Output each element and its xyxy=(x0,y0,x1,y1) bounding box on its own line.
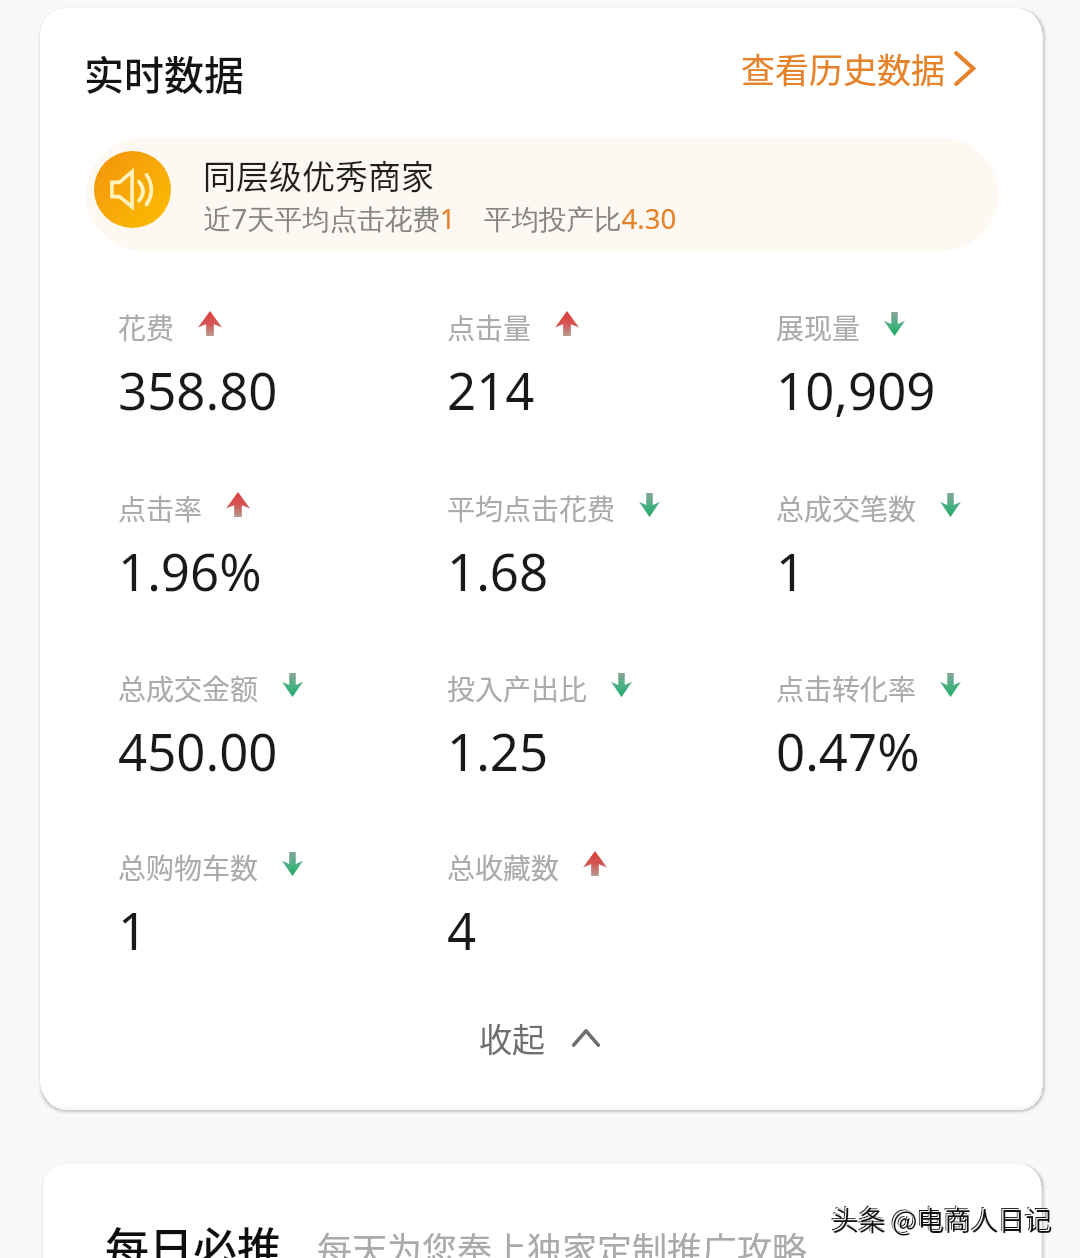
button[interactable]: 平均点击花费 xyxy=(447,488,747,598)
staticText: 头条 @电商人日记 xyxy=(830,1198,1051,1237)
button[interactable]: 点击量 xyxy=(447,307,747,417)
staticText: 总收藏数 xyxy=(447,847,560,888)
button[interactable]: 查看历史数据 xyxy=(725,28,991,109)
staticText: 10,909 xyxy=(776,355,936,417)
button[interactable] xyxy=(43,1164,1041,1258)
staticText: 同层级优秀商家 xyxy=(203,151,434,199)
staticText: 投入产出比 xyxy=(447,668,588,709)
staticText: 查看历史数据 xyxy=(741,44,945,93)
button[interactable]: 总成交金额 xyxy=(118,668,418,778)
button[interactable]: 点击转化率 xyxy=(776,668,1076,778)
staticText: 1 xyxy=(776,536,806,598)
staticText: 每日必推 xyxy=(105,1214,281,1258)
staticText: 0.47% xyxy=(776,716,920,778)
button[interactable]: 收起 xyxy=(437,1001,641,1075)
staticText: 展现量 xyxy=(776,307,861,348)
staticText: 214 xyxy=(447,355,535,417)
button[interactable]: 同层级优秀商家 xyxy=(86,138,998,251)
button[interactable]: 总收藏数 xyxy=(447,847,747,957)
staticText: 总成交金额 xyxy=(118,668,259,709)
staticText: 近7天平均点击花费1 平均投产比4.30 xyxy=(204,200,677,238)
staticText: 1 xyxy=(118,895,148,957)
button[interactable]: 花费 xyxy=(118,307,418,417)
staticText: 点击量 xyxy=(447,307,532,348)
button[interactable]: 投入产出比 xyxy=(447,668,747,778)
staticText: 总成交笔数 xyxy=(776,488,917,529)
staticText: 450.00 xyxy=(118,716,278,778)
staticText: 1.25 xyxy=(447,716,549,778)
staticText: 总购物车数 xyxy=(118,847,259,888)
staticText: 点击转化率 xyxy=(776,668,917,709)
button[interactable]: 总成交笔数 xyxy=(776,488,1076,598)
staticText: 头条 @电商人日记 xyxy=(831,1199,1052,1238)
staticText: 358.80 xyxy=(118,355,278,417)
staticText: 平均点击花费 xyxy=(447,488,616,529)
staticText: 1.68 xyxy=(447,536,549,598)
button[interactable]: 展现量 xyxy=(776,307,1076,417)
staticText: 1.96% xyxy=(118,536,262,598)
button[interactable]: 总购物车数 xyxy=(118,847,418,957)
staticText: 头条 @电商人日记 xyxy=(832,1200,1053,1239)
staticText: 点击率 xyxy=(118,488,203,529)
button[interactable]: 点击率 xyxy=(118,488,418,598)
staticText: 每天为您奉上独家定制推广攻略 xyxy=(317,1222,808,1258)
staticText: 收起 xyxy=(479,1014,545,1062)
staticText: 实时数据 xyxy=(84,44,244,102)
staticText: 花费 xyxy=(118,307,175,348)
staticText: 4 xyxy=(447,895,477,957)
